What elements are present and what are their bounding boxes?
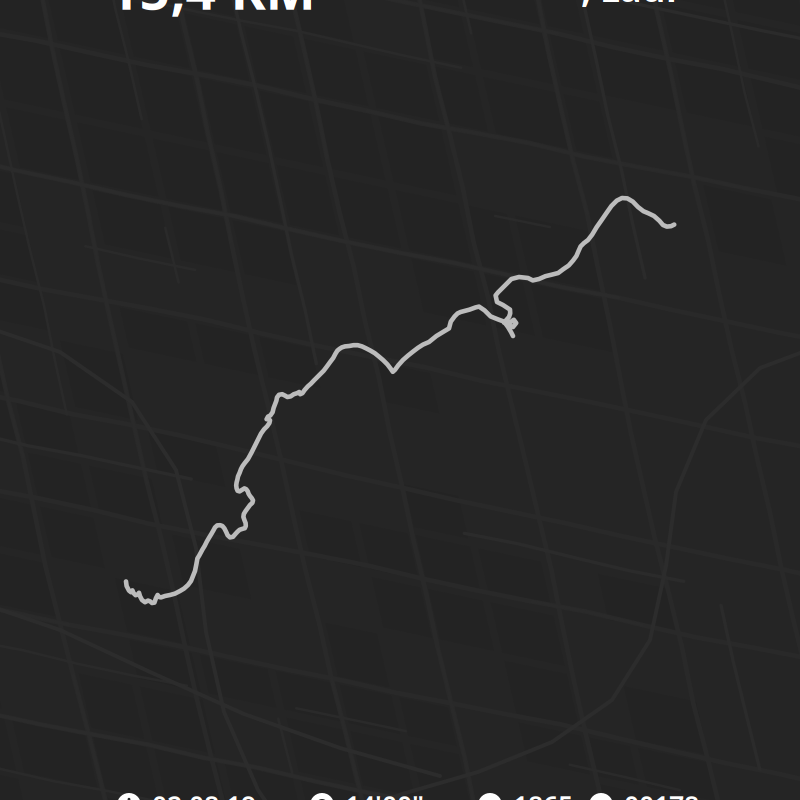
button[interactable]: 14'00" (310, 787, 424, 800)
button[interactable]: 1865 (478, 787, 573, 800)
button[interactable]: Open activity map (0, 0, 800, 800)
staticText: 15,4 KM (108, 0, 315, 24)
staticText: , Lauf (581, 0, 679, 12)
button[interactable]: 02:08:19 (117, 787, 256, 800)
staticText: 14'00" (345, 787, 424, 800)
staticText: 00178 (624, 787, 699, 800)
button[interactable]: 00178 (589, 787, 699, 800)
staticText: 1865 (513, 787, 573, 800)
staticText: 02:08:19 (152, 787, 256, 800)
